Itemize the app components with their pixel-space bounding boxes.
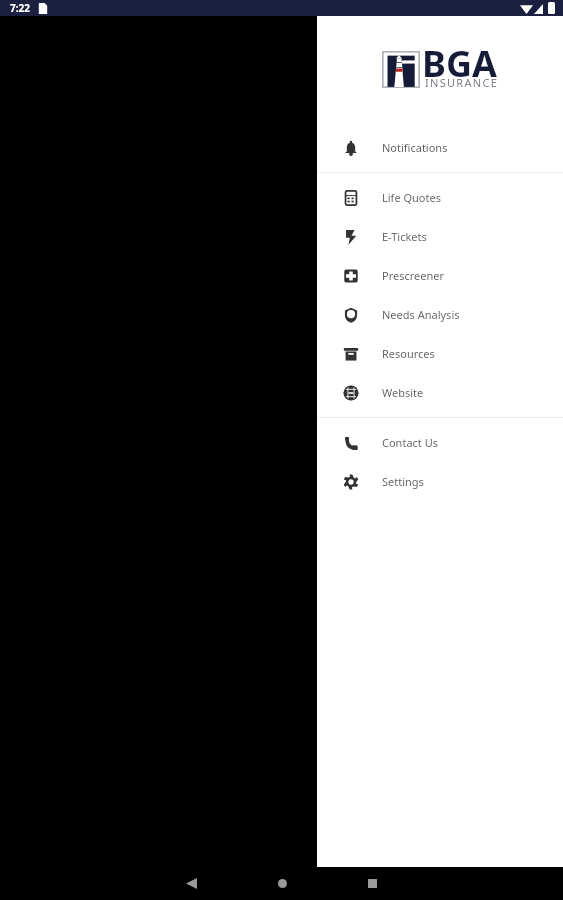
button[interactable]: Prescreener: [317, 256, 563, 295]
button[interactable]: Settings: [317, 462, 563, 501]
staticText: Life Quotes: [382, 190, 441, 205]
staticText: Contact Us: [382, 435, 438, 450]
button[interactable]: Website: [317, 373, 563, 412]
staticText: Settings: [382, 474, 424, 489]
staticText: Website: [382, 385, 424, 400]
button[interactable]: Recents: [332, 867, 412, 900]
staticText: Notifications: [382, 140, 448, 155]
staticText: Needs Analysis: [382, 307, 460, 322]
button[interactable]: Life Quotes: [317, 178, 563, 217]
button[interactable]: Contact Us: [317, 423, 563, 462]
staticText: BGA: [422, 39, 497, 88]
staticText: Resources: [382, 346, 435, 361]
button[interactable]: Notifications: [317, 128, 563, 167]
button[interactable]: Needs Analysis: [317, 295, 563, 334]
button[interactable]: Home: [242, 867, 322, 900]
button[interactable]: Resources: [317, 334, 563, 373]
button[interactable]: E-Tickets: [317, 217, 563, 256]
staticText: E-Tickets: [382, 229, 427, 244]
staticText: 7:22: [10, 1, 30, 15]
button[interactable]: Back: [151, 867, 231, 900]
staticText: INSURANCE: [425, 75, 499, 90]
staticText: Prescreener: [382, 268, 445, 283]
